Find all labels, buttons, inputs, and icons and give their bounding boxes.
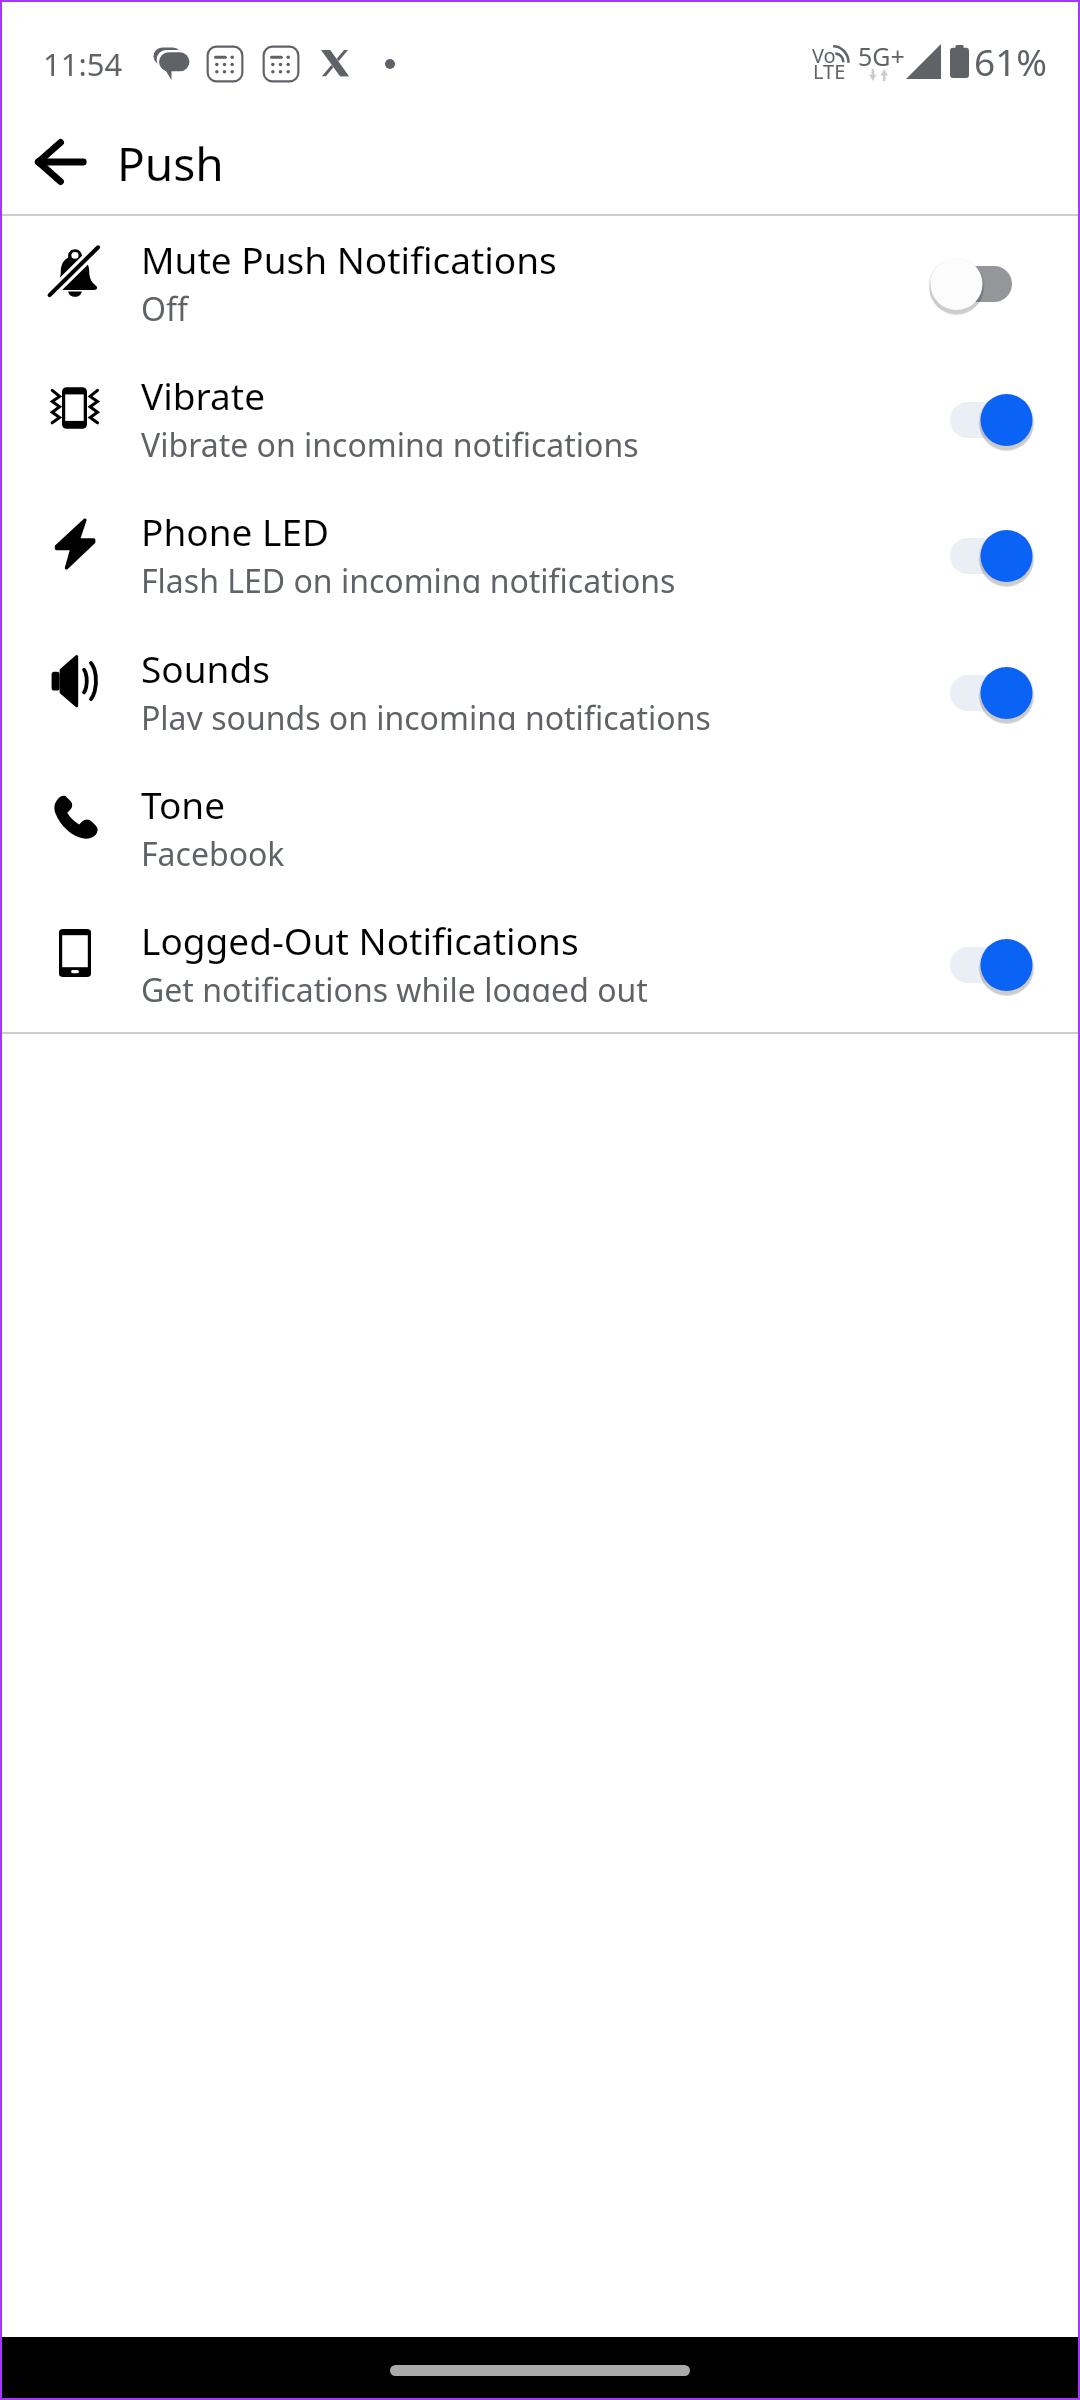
staticText: Off <box>141 287 189 321</box>
staticText: 61% <box>974 36 1048 86</box>
staticText: Push <box>117 132 224 195</box>
button[interactable]: Mute Push Notifications toggle <box>923 249 1041 319</box>
staticText: Vibrate on incoming notifications <box>141 423 639 457</box>
button[interactable]: Logged-Out Notifications <box>0 897 1080 1033</box>
button[interactable]: Phone LED toggle <box>923 521 1041 591</box>
staticText: Vibrate <box>141 370 266 420</box>
staticText: LTE <box>813 58 846 85</box>
staticText: Facebook <box>141 832 285 866</box>
staticText: Vo <box>812 42 836 69</box>
button[interactable]: Phone LED <box>0 488 1080 624</box>
staticText: Mute Push Notifications <box>141 234 557 284</box>
staticText: Flash LED on incoming notifications <box>141 559 676 593</box>
button[interactable]: Vibrate <box>0 352 1080 488</box>
staticText: Logged-Out Notifications <box>141 915 579 965</box>
staticText: Phone LED <box>141 506 329 556</box>
staticText: Play sounds on incoming notifications <box>141 696 711 730</box>
staticText: 11:54 <box>43 43 123 85</box>
button[interactable]: Back <box>20 122 100 202</box>
staticText: 5G+ <box>858 39 905 73</box>
button[interactable]: Mute Push Notifications <box>0 216 1080 352</box>
staticText: Tone <box>141 779 226 829</box>
button[interactable]: Logged-Out Notifications toggle <box>923 930 1041 1000</box>
button[interactable]: Tone <box>0 761 1080 897</box>
staticText: Sounds <box>141 643 270 693</box>
button[interactable]: Sounds <box>0 625 1080 761</box>
staticText: Get notifications while logged out <box>141 968 648 1002</box>
button[interactable]: Vibrate toggle <box>923 385 1041 455</box>
button[interactable]: Sounds toggle <box>923 658 1041 728</box>
